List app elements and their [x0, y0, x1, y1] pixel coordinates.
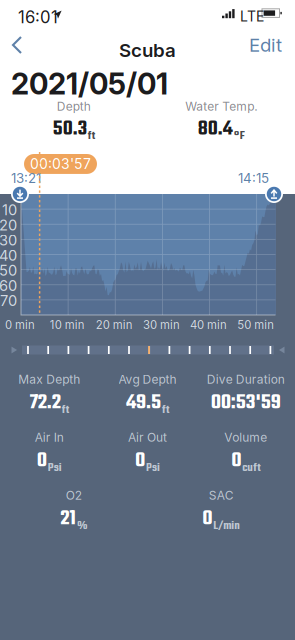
- staticText: Max Depth: [18, 372, 80, 386]
- staticText: 14:15: [238, 170, 269, 186]
- staticText: 10 min: [50, 318, 85, 332]
- button[interactable]: Back: [8, 33, 34, 57]
- staticText: 50.3: [53, 113, 87, 145]
- staticText: Water Temp.: [185, 99, 257, 113]
- staticText: 13:21: [11, 170, 41, 186]
- staticText: 0 min: [5, 318, 35, 332]
- staticText: Air Out: [128, 430, 167, 444]
- staticText: 60: [0, 277, 17, 294]
- staticText: 16:01: [18, 7, 58, 27]
- staticText: L/min: [213, 517, 240, 535]
- staticText: 0: [202, 502, 212, 535]
- staticText: SAC: [209, 488, 234, 502]
- staticText: 70: [0, 292, 17, 310]
- staticText: 00:53'59: [211, 386, 281, 419]
- staticText: Scuba: [119, 39, 176, 62]
- staticText: 30 min: [143, 318, 180, 332]
- staticText: 50: [0, 262, 17, 279]
- staticText: 80.4: [198, 113, 233, 145]
- staticText: 20: [0, 216, 17, 234]
- staticText: 10: [2, 201, 17, 219]
- staticText: 20 min: [96, 318, 133, 332]
- staticText: 30: [0, 231, 17, 249]
- staticText: Psi: [146, 459, 160, 477]
- staticText: LTE: [240, 8, 264, 25]
- staticText: °F: [234, 127, 245, 145]
- staticText: %: [77, 517, 87, 535]
- staticText: 0: [37, 444, 47, 477]
- staticText: 49.5: [126, 386, 161, 419]
- staticText: Psi: [48, 459, 62, 477]
- staticText: Edit: [249, 34, 282, 56]
- staticText: 00:03'57: [30, 155, 91, 172]
- staticText: Avg Depth: [118, 372, 176, 386]
- staticText: O2: [66, 488, 82, 502]
- staticText: Air In: [35, 430, 64, 444]
- staticText: 50 min: [237, 318, 274, 332]
- button[interactable]: Edit: [238, 33, 282, 57]
- staticText: Depth: [57, 99, 91, 113]
- staticText: 40 min: [190, 318, 227, 332]
- staticText: Dive Duration: [207, 372, 285, 386]
- staticText: 2021/05/01: [11, 66, 168, 101]
- staticText: 21: [60, 502, 76, 535]
- staticText: ft: [162, 401, 169, 419]
- staticText: 72.2: [30, 386, 61, 419]
- staticText: ft: [88, 127, 95, 145]
- staticText: 40: [0, 246, 17, 264]
- staticText: cuft: [242, 459, 260, 477]
- staticText: Volume: [224, 430, 267, 444]
- staticText: ft: [62, 401, 69, 419]
- staticText: 0: [135, 444, 145, 477]
- staticText: 0: [231, 444, 241, 477]
